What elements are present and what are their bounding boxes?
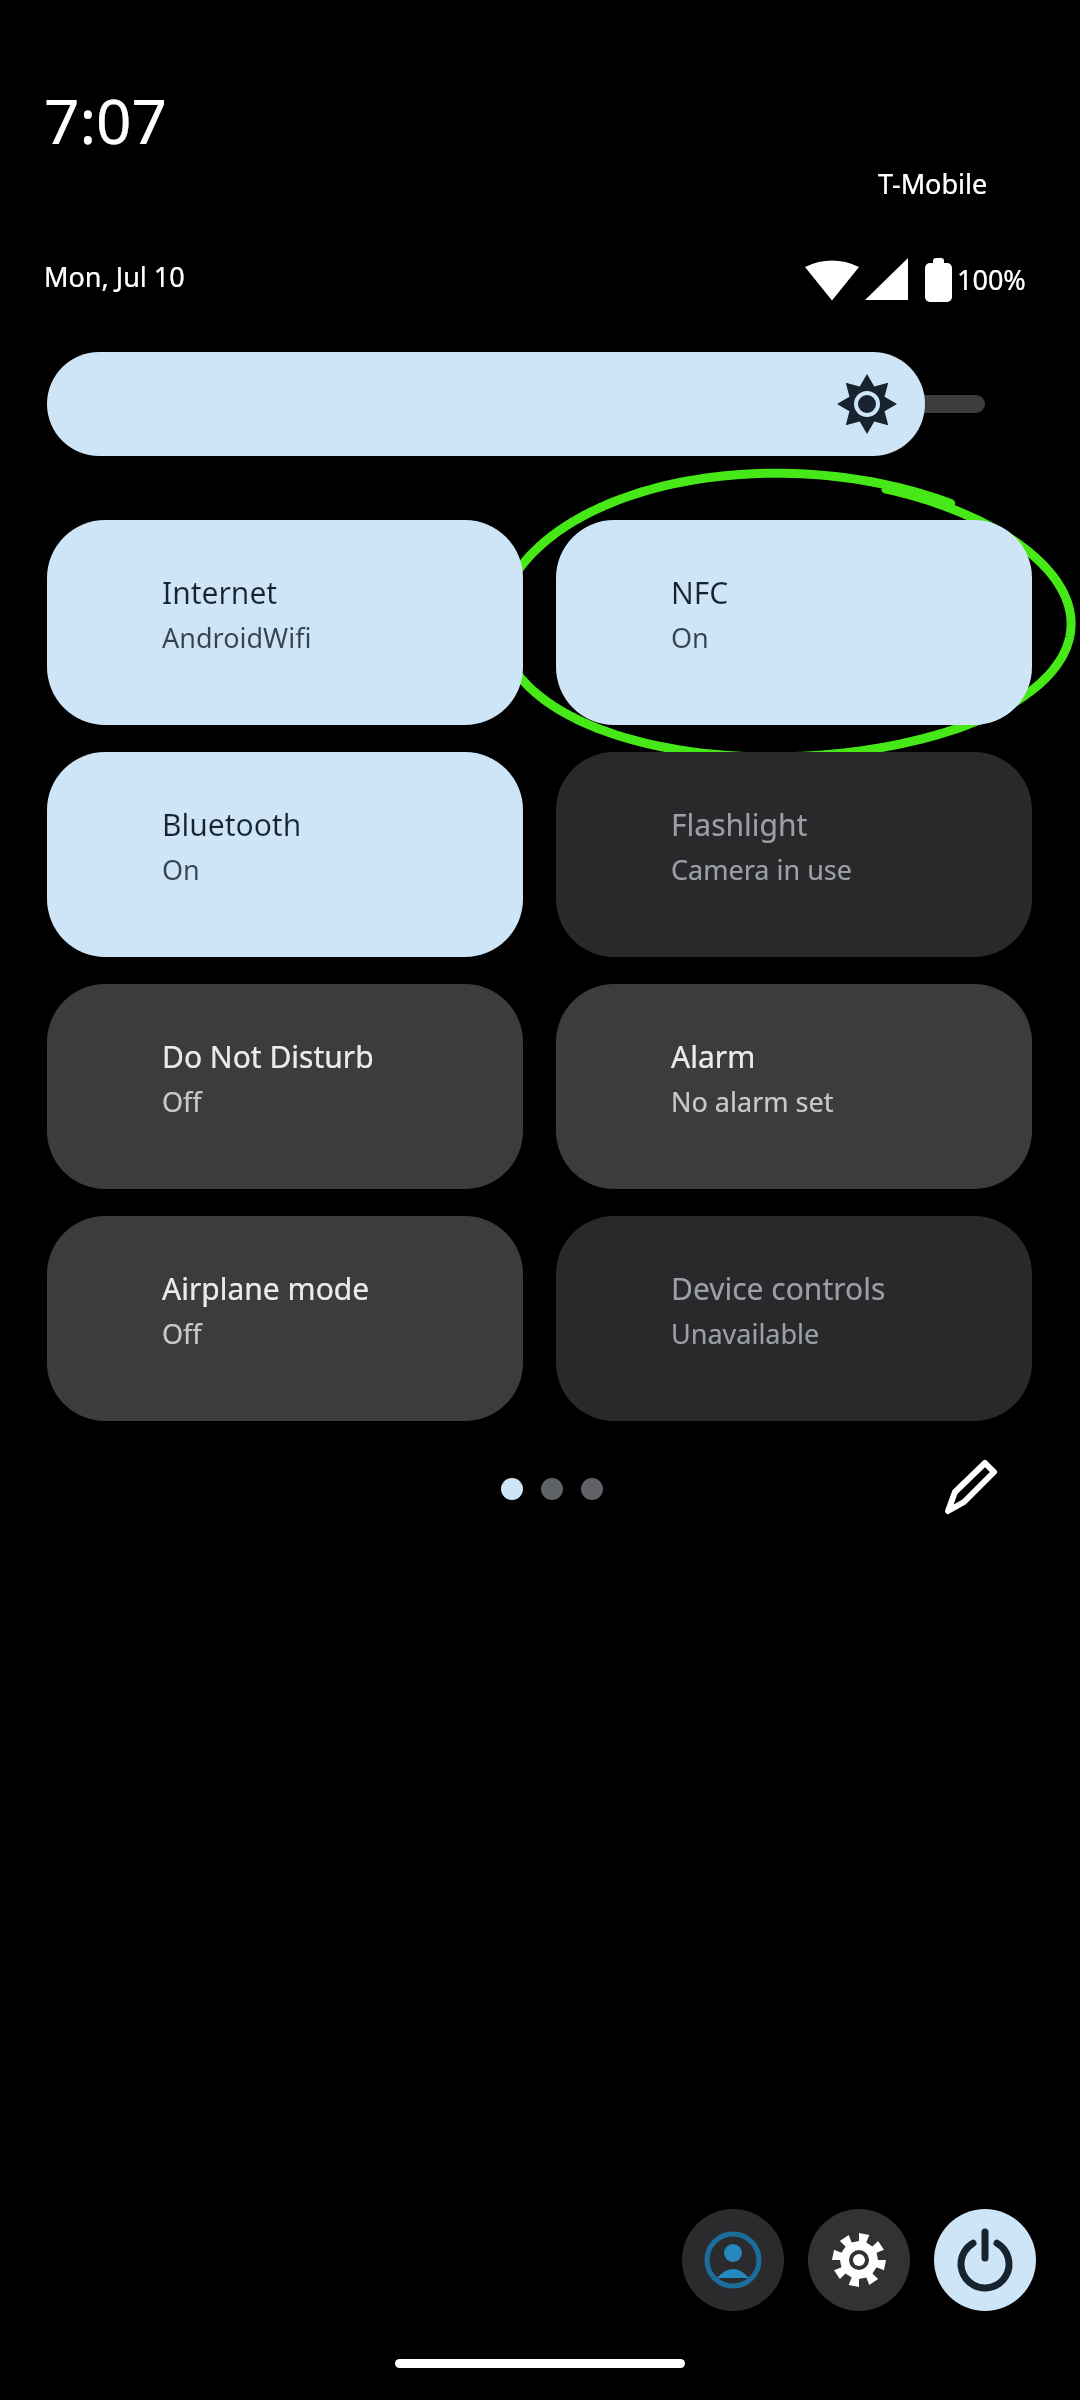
button[interactable]: [47, 1216, 523, 1421]
staticText: Internet: [162, 572, 278, 613]
staticText: 100%: [957, 261, 1026, 298]
staticText: Unavailable: [671, 1315, 820, 1352]
staticText: Flashlight: [671, 804, 808, 845]
staticText: Off: [162, 1315, 202, 1352]
staticText: Device controls: [671, 1268, 886, 1309]
button[interactable]: [47, 752, 523, 957]
staticText: Camera in use: [671, 851, 852, 888]
button[interactable]: [556, 752, 1032, 957]
staticText: 7:07: [44, 78, 168, 162]
button[interactable]: User: [682, 2209, 784, 2311]
button[interactable]: [47, 984, 523, 1189]
button[interactable]: [556, 520, 1032, 725]
staticText: AndroidWifi: [162, 619, 312, 656]
staticText: On: [671, 619, 709, 656]
button[interactable]: [556, 1216, 1032, 1421]
staticText: Alarm: [671, 1036, 756, 1077]
button[interactable]: Brightness: [47, 352, 925, 456]
button[interactable]: Settings: [808, 2209, 910, 2311]
button[interactable]: Power: [934, 2209, 1036, 2311]
staticText: T-Mobile: [878, 165, 988, 202]
button[interactable]: [47, 520, 523, 725]
staticText: Mon, Jul 10: [44, 258, 185, 295]
staticText: No alarm set: [671, 1083, 834, 1120]
button[interactable]: [556, 984, 1032, 1189]
button[interactable]: Edit tiles: [930, 1449, 1010, 1529]
staticText: Airplane mode: [162, 1268, 370, 1309]
staticText: Bluetooth: [162, 804, 302, 845]
staticText: Off: [162, 1083, 202, 1120]
staticText: NFC: [671, 572, 729, 613]
staticText: Do Not Disturb: [162, 1036, 374, 1077]
staticText: On: [162, 851, 200, 888]
